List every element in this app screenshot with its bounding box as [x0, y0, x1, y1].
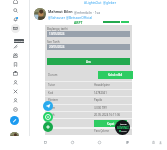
staticText: Tutar	[48, 83, 55, 87]
button[interactable]: Telegram	[43, 101, 53, 111]
staticText: ÖDEME	[120, 123, 127, 126]
button[interactable]: Downloads	[156, 138, 164, 146]
staticText: Başlangıç tarihi	[47, 27, 68, 31]
staticText: Mahmut Bilen	[48, 9, 73, 14]
button[interactable]: Post	[10, 116, 19, 125]
button[interactable]: Share	[43, 122, 53, 132]
button[interactable]: Secure payment seal	[115, 120, 130, 135]
staticText: Kapat	[107, 122, 115, 126]
button[interactable]: Kapat	[94, 120, 127, 127]
button[interactable]: Bookmarks	[9, 69, 21, 78]
button[interactable]: Tarih	[45, 111, 132, 118]
staticText: Messages	[14, 40, 24, 43]
button[interactable]: Profile	[9, 96, 21, 105]
staticText: 20/05/2024	[49, 45, 65, 49]
staticText: Havale/pine	[94, 83, 110, 87]
button[interactable]: Jobs	[9, 87, 21, 96]
button[interactable]: Communities	[9, 51, 21, 60]
button[interactable]: Bookmarks	[149, 138, 157, 146]
staticText: Ara	[86, 60, 91, 64]
button[interactable]: Home	[9, 0, 21, 6]
staticText: Tarih	[48, 113, 55, 117]
staticText: Kod	[48, 91, 54, 95]
staticText: Son Tarih	[47, 40, 60, 44]
button[interactable]: Yöntem	[45, 96, 132, 103]
button[interactable]: Kod	[45, 89, 132, 96]
staticText: Sistem	[121, 130, 127, 132]
staticText: #LightsOut @gleber	[84, 0, 117, 4]
button[interactable]: Messages	[9, 24, 21, 33]
staticText: Yöntem	[48, 98, 59, 102]
button[interactable]: Home	[95, 138, 103, 146]
button[interactable]: Notifications	[9, 15, 21, 24]
staticText: İşlem	[48, 106, 56, 110]
button[interactable]: Tabs	[123, 138, 131, 146]
button[interactable]: 13/05/2024	[47, 31, 130, 37]
button[interactable]: Account	[10, 132, 19, 141]
staticText: 13/05/2024	[49, 32, 65, 36]
staticText: Para Çekme	[94, 129, 110, 133]
staticText: 3.000 TRY	[94, 106, 107, 110]
staticText: ARPT	[74, 20, 83, 24]
staticText: @mhmtbiln · 1sa	[74, 10, 101, 14]
button[interactable]: İşlem	[45, 104, 132, 111]
button[interactable]: Lists	[9, 78, 21, 87]
staticText: 20.05.2024 16:11:06	[94, 113, 121, 117]
button[interactable]: Tutar	[45, 81, 132, 88]
button[interactable]: Explore	[9, 6, 21, 15]
staticText: Durum	[48, 73, 58, 77]
staticText: Papilo	[94, 98, 103, 102]
staticText: GÜVENLİ	[117, 126, 129, 130]
button[interactable]: More	[9, 105, 21, 114]
staticText: @Sahsuser @BetssonOfficial	[48, 15, 93, 19]
button[interactable]: Grok	[9, 42, 21, 51]
staticText: 14782041	[94, 91, 107, 95]
button[interactable]: Durum	[45, 70, 132, 80]
button[interactable]: Refresh	[68, 138, 76, 146]
button[interactable]: WhatsApp	[43, 112, 53, 122]
staticText: Kabul edildi	[108, 73, 123, 77]
button[interactable]: Premium	[9, 60, 21, 69]
button[interactable]: 20/05/2024	[47, 44, 130, 50]
button[interactable]: Ara	[47, 58, 130, 65]
button[interactable]: Back	[41, 138, 49, 146]
